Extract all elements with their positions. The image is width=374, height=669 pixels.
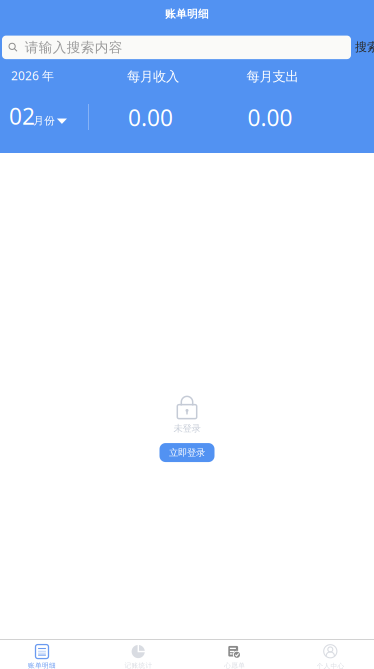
- button[interactable]: 02: [9, 101, 69, 131]
- staticText: 02: [9, 101, 35, 131]
- staticText: 立即登录: [169, 447, 205, 458]
- staticText: 心愿单: [224, 662, 245, 669]
- staticText: 账单明细: [28, 662, 56, 669]
- button[interactable]: 心愿单: [193, 640, 277, 669]
- staticText: 2026 年: [11, 67, 54, 83]
- staticText: 个人中心: [317, 662, 345, 669]
- staticText: 0.00: [128, 102, 173, 133]
- staticText: 月份: [33, 114, 55, 127]
- staticText: 0.00: [247, 102, 292, 133]
- button[interactable]: 记账统计: [96, 640, 180, 669]
- staticText: 每月支出: [246, 68, 298, 85]
- staticText: 账单明细: [165, 7, 209, 20]
- button[interactable]: 立即登录: [159, 443, 214, 462]
- button[interactable]: 账单明细: [0, 640, 84, 669]
- button[interactable]: 个人中心: [289, 640, 373, 669]
- staticText: 记账统计: [124, 662, 152, 669]
- staticText: 每月收入: [127, 68, 179, 85]
- staticText: 请输入搜索内容: [25, 39, 123, 56]
- staticText: 未登录: [173, 423, 200, 434]
- staticText: 搜索: [355, 40, 374, 54]
- button[interactable]: 搜索: [355, 41, 374, 53]
